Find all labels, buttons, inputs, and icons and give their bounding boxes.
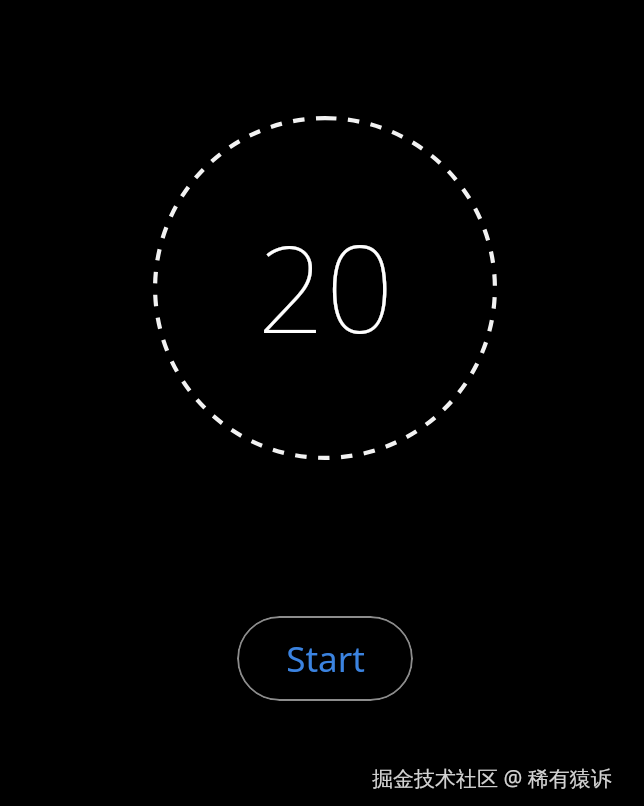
button[interactable]: Start — [237, 616, 413, 701]
staticText: 掘金技术社区 @ 稀有猿诉 — [372, 764, 612, 793]
staticText: 20 — [257, 205, 394, 368]
staticText: Start — [286, 635, 365, 683]
